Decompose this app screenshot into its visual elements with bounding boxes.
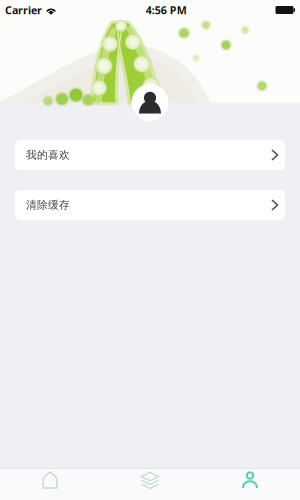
staticText: 4:56 PM (146, 3, 187, 17)
button[interactable]: 清除缓存 (15, 190, 285, 220)
staticText: 我的喜欢 (26, 148, 70, 161)
button[interactable]: Profile (200, 469, 300, 500)
staticText: Carrier (5, 3, 42, 17)
button[interactable]: Categories (100, 469, 200, 500)
button[interactable]: 我的喜欢 (15, 140, 285, 170)
button[interactable]: Home (0, 469, 100, 500)
staticText: 清除缓存 (26, 198, 70, 211)
